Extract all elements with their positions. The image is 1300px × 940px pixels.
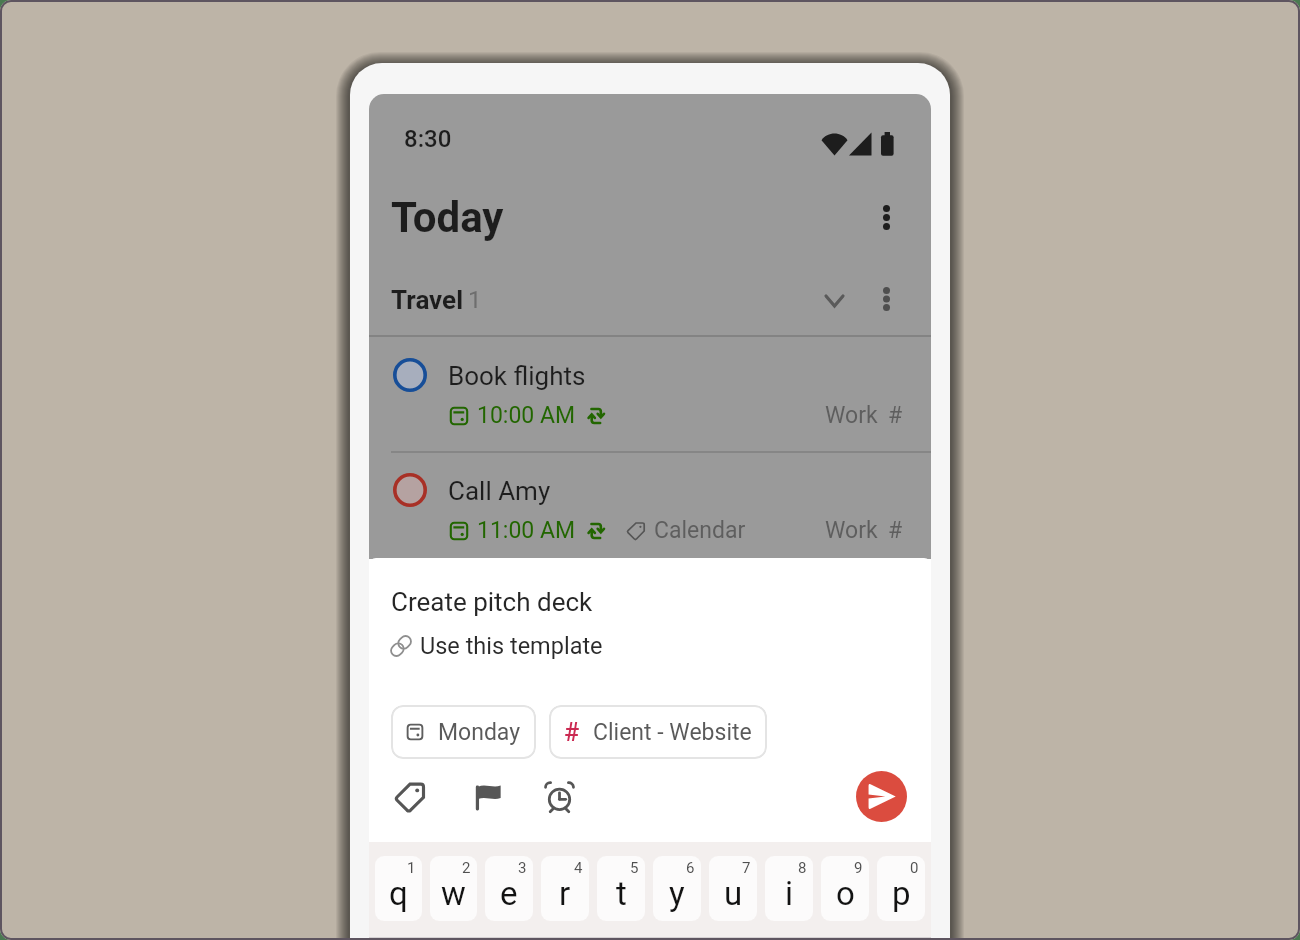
button[interactable]: 5 bbox=[597, 856, 645, 921]
button[interactable]: 2 bbox=[430, 856, 477, 921]
staticText: 7 bbox=[742, 859, 751, 877]
button[interactable]: 4 bbox=[541, 856, 589, 921]
staticText: 8:30 bbox=[404, 125, 452, 153]
staticText: i bbox=[785, 874, 794, 913]
staticText: Client - Website bbox=[593, 719, 752, 746]
button[interactable]: Call Amy bbox=[369, 467, 931, 566]
staticText: 3 bbox=[518, 859, 527, 877]
staticText: 9 bbox=[854, 859, 863, 877]
staticText: Work bbox=[825, 402, 878, 429]
button[interactable]: 3 bbox=[485, 856, 533, 921]
staticText: Travel bbox=[391, 285, 464, 315]
staticText: Work bbox=[825, 517, 878, 544]
button[interactable]: More options bbox=[863, 194, 909, 240]
button[interactable]: 1 bbox=[375, 856, 422, 921]
staticText: 11:00 AM bbox=[477, 517, 576, 544]
staticText: Calendar bbox=[654, 517, 746, 544]
staticText: Book flights bbox=[448, 361, 586, 391]
staticText: Monday bbox=[438, 719, 521, 746]
button[interactable]: Section menu bbox=[863, 276, 909, 322]
staticText: 10:00 AM bbox=[477, 402, 576, 429]
button[interactable]: 9 bbox=[821, 856, 869, 921]
staticText: 1 bbox=[468, 286, 482, 314]
staticText: Call Amy bbox=[448, 476, 551, 506]
staticText: 5 bbox=[630, 859, 639, 877]
button[interactable]: 7 bbox=[709, 856, 757, 921]
button[interactable]: 0 bbox=[877, 856, 925, 921]
button[interactable]: Priority bbox=[463, 772, 513, 822]
button[interactable]: Send bbox=[856, 771, 907, 822]
staticText: o bbox=[836, 874, 855, 913]
staticText: # bbox=[888, 402, 903, 429]
button[interactable]: 8 bbox=[765, 856, 813, 921]
staticText: q bbox=[389, 874, 408, 913]
staticText: 1 bbox=[407, 859, 416, 877]
staticText: y bbox=[669, 874, 685, 913]
staticText: 6 bbox=[686, 859, 695, 877]
staticText: w bbox=[441, 874, 466, 913]
staticText: Use this template bbox=[420, 632, 603, 660]
button[interactable]: Book flights bbox=[369, 352, 931, 451]
staticText: r bbox=[559, 874, 571, 913]
staticText: 0 bbox=[910, 859, 919, 877]
button[interactable]: Use this template bbox=[389, 632, 603, 660]
staticText: # bbox=[564, 718, 580, 747]
staticText: t bbox=[616, 874, 627, 913]
staticText: # bbox=[888, 517, 903, 544]
button[interactable]: Label bbox=[385, 772, 435, 822]
staticText: 4 bbox=[574, 859, 583, 877]
staticText: Create pitch deck bbox=[391, 587, 593, 617]
button[interactable]: Reminder bbox=[534, 772, 584, 822]
staticText: u bbox=[724, 874, 743, 913]
staticText: Today bbox=[391, 193, 504, 242]
staticText: p bbox=[892, 874, 911, 913]
button[interactable]: Collapse section bbox=[811, 278, 857, 324]
staticText: 2 bbox=[462, 859, 471, 877]
button[interactable]: # bbox=[549, 705, 767, 759]
staticText: e bbox=[500, 874, 518, 913]
button[interactable]: 6 bbox=[653, 856, 701, 921]
staticText: 8 bbox=[798, 859, 807, 877]
button[interactable]: Monday bbox=[391, 705, 536, 759]
